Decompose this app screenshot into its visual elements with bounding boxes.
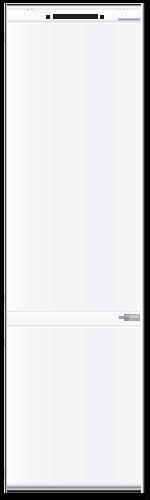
button[interactable]: Refrigerator product photo [0,0,150,500]
